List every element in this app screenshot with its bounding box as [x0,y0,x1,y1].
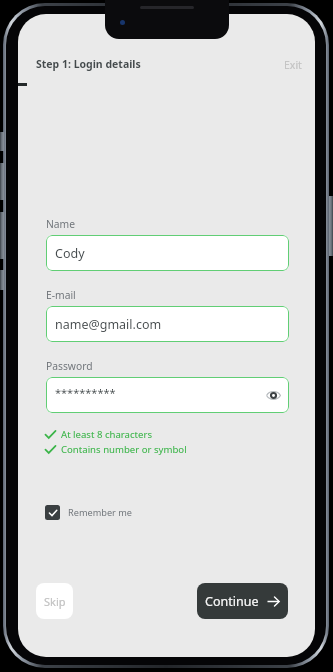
staticText: Skip [44,594,66,609]
other: Show password [266,390,281,401]
staticText: Continue [205,593,259,610]
button[interactable]: Continue [197,583,288,619]
button[interactable]: Step 1: Login details [31,52,146,76]
button[interactable]: Cody [46,235,289,271]
button[interactable]: Exit [279,53,307,77]
staticText: Contains number or symbol [61,443,187,456]
button[interactable]: Remember me [45,505,133,520]
staticText: At least 8 characters [61,428,152,441]
button[interactable]: name@gmail.com [46,306,289,342]
staticText: Remember me [68,506,133,519]
staticText: Name [46,217,76,231]
staticText: Cody [55,245,85,262]
staticText: ********** [55,385,116,400]
staticText: E-mail [46,288,76,302]
staticText: name@gmail.com [55,316,162,333]
staticText: Password [46,359,93,373]
staticText: Step 1: Login details [36,57,141,71]
staticText: Exit [284,58,302,72]
button[interactable]: ********** [46,377,289,413]
button[interactable]: Skip [36,583,73,619]
